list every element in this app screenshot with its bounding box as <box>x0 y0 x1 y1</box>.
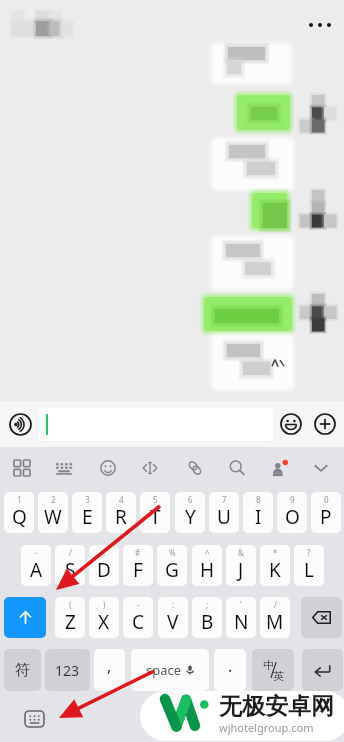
button[interactable] <box>205 132 300 196</box>
staticText: 2 <box>51 494 56 505</box>
button[interactable]: Enter <box>302 649 343 691</box>
staticText: T <box>150 504 161 530</box>
staticText: X <box>98 609 110 635</box>
button[interactable]: Hide keyboard <box>24 710 45 728</box>
button[interactable] <box>244 185 295 236</box>
staticText: 0 <box>324 494 329 505</box>
staticText: G <box>165 557 179 583</box>
staticText: # <box>135 547 141 558</box>
staticText: 123 <box>55 661 80 680</box>
staticText: D <box>97 557 111 583</box>
staticText: V <box>167 609 179 635</box>
button[interactable]: ^ <box>192 545 222 586</box>
button[interactable] <box>205 37 298 90</box>
staticText: A <box>30 557 43 583</box>
staticText: / <box>69 547 72 558</box>
button[interactable]: Emoji <box>92 452 124 484</box>
button[interactable]: / <box>55 545 85 586</box>
staticText: 无极安卓网 <box>219 692 334 721</box>
button[interactable]: 9 <box>277 492 307 533</box>
button[interactable]: . <box>214 649 246 691</box>
staticText: 中 <box>263 658 274 672</box>
staticText: B <box>201 609 214 635</box>
button[interactable]: Edit text <box>134 452 166 484</box>
button[interactable]: - <box>123 597 153 638</box>
button[interactable]: % <box>157 545 187 586</box>
button[interactable]: Emoji <box>278 411 304 437</box>
staticText: R <box>115 504 127 530</box>
button[interactable]: ) <box>89 597 119 638</box>
staticText: Q <box>12 504 27 530</box>
button[interactable]: 0 <box>311 492 341 533</box>
staticText: space <box>146 661 182 679</box>
button[interactable]: : <box>89 545 119 586</box>
staticText: ^ <box>205 547 210 558</box>
button[interactable]: Contacts <box>263 452 295 484</box>
button[interactable]: * <box>260 545 290 586</box>
staticText: L <box>304 557 314 583</box>
button[interactable]: Link <box>179 452 211 484</box>
button[interactable]: / <box>260 597 290 638</box>
button[interactable]: # <box>123 545 153 586</box>
button[interactable] <box>196 289 300 339</box>
button[interactable]: Chinese English toggle <box>252 649 294 691</box>
button[interactable]: 123 <box>45 649 90 691</box>
button[interactable]: 6 <box>175 492 205 533</box>
button[interactable]: ( <box>55 597 85 638</box>
staticText: ' <box>240 599 242 610</box>
button[interactable]: Add <box>312 411 338 437</box>
staticText: : <box>172 599 175 610</box>
button[interactable]: 符 <box>4 649 41 691</box>
button[interactable]: Keyboard <box>48 452 80 484</box>
staticText: 6 <box>188 494 193 505</box>
button[interactable] <box>205 328 300 396</box>
button[interactable]: 4 <box>106 492 136 533</box>
button[interactable]: Backspace <box>301 597 342 638</box>
staticText: 1 <box>17 494 22 505</box>
staticText: . <box>228 655 233 677</box>
staticText: * <box>273 547 278 558</box>
staticText: ? <box>307 547 311 558</box>
button[interactable] <box>39 408 273 441</box>
button[interactable]: : <box>158 597 188 638</box>
staticText: 3 <box>85 494 90 505</box>
staticText: & <box>238 547 244 558</box>
staticText: H <box>200 557 215 583</box>
button[interactable]: 2 <box>38 492 68 533</box>
staticText: F <box>133 557 143 583</box>
button[interactable]: 7 <box>209 492 239 533</box>
button[interactable]: 8 <box>243 492 273 533</box>
staticText: P <box>320 504 332 530</box>
staticText: C <box>132 609 145 635</box>
staticText: U <box>217 504 231 530</box>
staticText: ; <box>206 599 209 610</box>
button[interactable]: Search <box>221 452 253 484</box>
button[interactable]: Shift <box>4 597 46 638</box>
staticText: J <box>238 557 244 583</box>
button[interactable]: 5 <box>140 492 170 533</box>
button[interactable]: Voice input <box>7 411 33 437</box>
button[interactable]: Collapse <box>305 452 337 484</box>
button[interactable]: 3 <box>72 492 102 533</box>
staticText: - <box>35 547 38 558</box>
button[interactable]: , <box>94 649 125 691</box>
staticText: Y <box>185 504 196 530</box>
button[interactable]: ; <box>192 597 222 638</box>
staticText: 9 <box>290 494 295 505</box>
button[interactable] <box>205 230 300 296</box>
button[interactable]: space <box>131 649 209 691</box>
button[interactable]: & <box>226 545 256 586</box>
staticText: N <box>234 609 249 635</box>
staticText: : <box>103 547 106 558</box>
staticText: 4 <box>119 494 124 505</box>
staticText: 5 <box>153 494 158 505</box>
button[interactable] <box>229 87 298 138</box>
button[interactable]: - <box>21 545 51 586</box>
button[interactable]: ? <box>294 545 324 586</box>
button[interactable]: ' <box>226 597 256 638</box>
staticText: wjhotelgroup.com <box>219 720 314 735</box>
button[interactable]: Apps <box>6 452 38 484</box>
button[interactable]: More options <box>305 17 335 33</box>
staticText: ( <box>69 599 72 610</box>
button[interactable]: 1 <box>4 492 34 533</box>
